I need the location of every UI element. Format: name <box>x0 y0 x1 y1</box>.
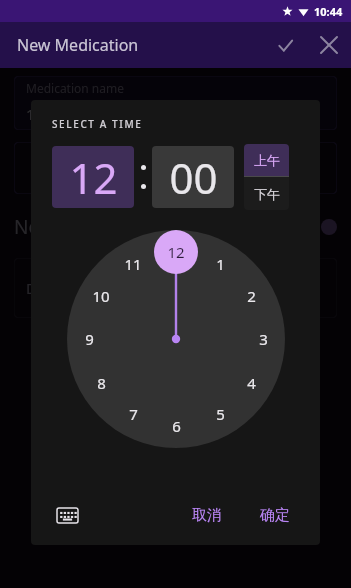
staticText: 取消 <box>192 506 222 525</box>
staticText: 12 <box>69 149 118 206</box>
staticText: Dosage <box>26 278 80 298</box>
staticText: 确定 <box>260 506 290 525</box>
staticText: 2 <box>247 286 256 306</box>
staticText: 3 <box>259 329 268 349</box>
button[interactable]: Clock dial <box>67 230 285 448</box>
staticText: New Medication <box>17 34 139 56</box>
button[interactable]: Save <box>263 23 307 67</box>
staticText: 10:44 <box>314 4 343 19</box>
staticText: 1 <box>216 254 225 274</box>
button[interactable]: 下午 <box>244 177 289 210</box>
staticText: 9 <box>85 329 94 349</box>
button[interactable]: 上午 <box>244 144 289 176</box>
staticText: 5 <box>216 404 225 424</box>
staticText: 1 <box>26 104 35 124</box>
staticText: 4 <box>247 373 256 393</box>
staticText: 7 <box>129 404 138 424</box>
staticText: Medication name <box>26 80 124 96</box>
staticText: 下午 <box>254 186 280 202</box>
staticText: 8 <box>97 373 106 393</box>
button[interactable]: Close <box>307 23 351 67</box>
button[interactable]: 00 <box>152 146 234 208</box>
button[interactable] <box>301 217 337 237</box>
button[interactable]: Switch to text input <box>47 495 87 535</box>
staticText: 11 <box>124 254 142 274</box>
button[interactable]: 12 <box>52 146 134 208</box>
staticText: 上午 <box>254 152 280 168</box>
staticText: 00 <box>169 149 218 206</box>
staticText: 10 <box>92 286 110 306</box>
staticText: SELECT A TIME <box>52 117 143 131</box>
staticText: 12 <box>167 242 185 262</box>
button[interactable]: 取消 <box>178 498 236 533</box>
button[interactable]: 确定 <box>246 498 304 533</box>
staticText: 6 <box>172 416 181 436</box>
staticText: Notifications <box>14 214 128 240</box>
